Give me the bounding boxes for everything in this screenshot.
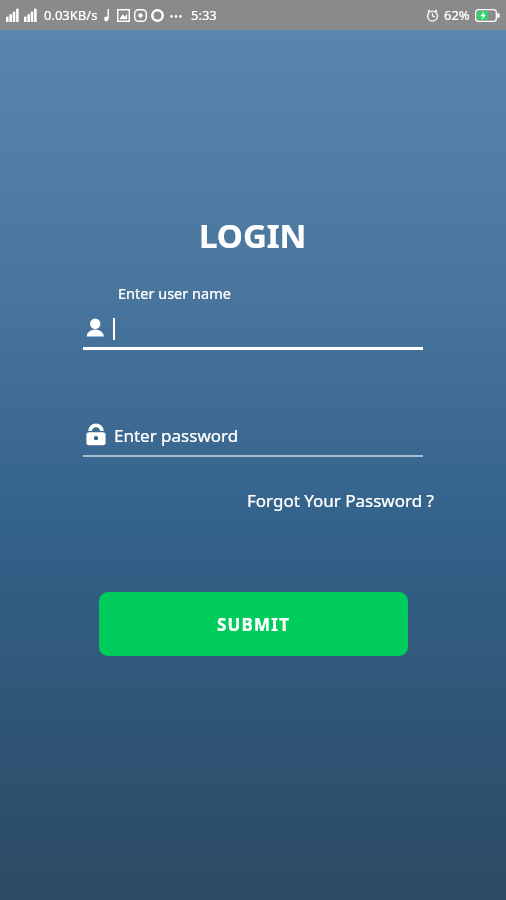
other: Password — [83, 422, 109, 448]
staticText: Enter password — [114, 424, 239, 447]
other: User name — [83, 316, 109, 342]
staticText: Forgot Your Password ? — [247, 489, 434, 512]
staticText: 62% — [444, 6, 470, 24]
staticText: SUBMIT — [217, 613, 291, 636]
staticText: 0.03KB/s — [44, 6, 98, 24]
staticText: Enter user name — [118, 283, 231, 303]
button[interactable]: SUBMIT — [99, 592, 408, 656]
button[interactable]: User name — [83, 316, 423, 350]
button[interactable]: Forgot Your Password ? — [243, 485, 438, 516]
button[interactable]: Password — [83, 422, 423, 457]
staticText: LOGIN — [199, 213, 307, 258]
staticText: 5:33 — [191, 6, 217, 24]
